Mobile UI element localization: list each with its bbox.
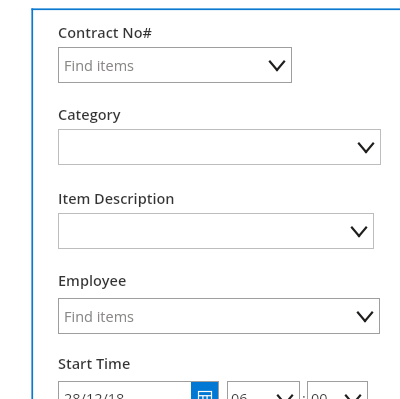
button[interactable]: Find items (58, 298, 380, 334)
button[interactable]: 28/12/18 (58, 381, 219, 399)
staticText: Start Time (58, 354, 131, 374)
staticText: Employee (58, 271, 127, 291)
button[interactable]: Find items (58, 47, 292, 83)
staticText: Find items (64, 56, 134, 76)
button[interactable]: Open date picker (191, 382, 219, 399)
staticText: Item Description (58, 189, 175, 209)
staticText: 28/12/18 (64, 389, 125, 399)
staticText: 00 (311, 389, 328, 399)
button[interactable] (58, 129, 381, 165)
button[interactable]: 06 (227, 381, 300, 399)
staticText: Category (58, 105, 121, 125)
staticText: Find items (64, 307, 134, 327)
staticText: 06 (231, 389, 248, 399)
button[interactable]: 00 (307, 381, 368, 399)
staticText: Contract No# (58, 23, 152, 43)
button[interactable] (58, 213, 374, 249)
staticText: : (302, 389, 306, 399)
